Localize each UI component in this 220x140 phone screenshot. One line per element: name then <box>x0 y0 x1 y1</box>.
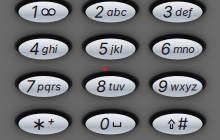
staticText: pqrs <box>37 80 61 93</box>
button[interactable]: 4 <box>0 18 88 79</box>
button[interactable]: 9 <box>132 56 220 117</box>
button[interactable]: shift hash <box>132 93 220 140</box>
staticText: 7 <box>26 77 35 96</box>
staticText: # <box>177 114 187 134</box>
staticText: + <box>47 114 55 128</box>
staticText: 0 <box>99 114 109 134</box>
staticText: def <box>175 5 192 18</box>
staticText: abc <box>107 5 127 18</box>
staticText: mno <box>173 42 194 55</box>
button[interactable]: 5 <box>65 18 155 79</box>
button[interactable]: 7 <box>0 56 88 117</box>
staticText: 4 <box>29 39 39 59</box>
staticText: 1 <box>31 2 38 22</box>
staticText: 3 <box>163 2 173 22</box>
staticText: 5 <box>98 39 108 59</box>
staticText: 9 <box>158 77 168 96</box>
button[interactable]: 3 <box>132 0 220 42</box>
staticText: 8 <box>96 77 106 96</box>
button[interactable]: 6 <box>132 18 220 79</box>
staticText: ghi <box>42 42 58 55</box>
staticText: 2 <box>94 2 104 22</box>
button[interactable]: 0 space <box>65 93 155 140</box>
staticText: ∗ <box>32 114 47 134</box>
staticText: jkl <box>111 42 123 55</box>
staticText: wxyz <box>170 80 197 93</box>
button[interactable]: star plus <box>0 93 88 140</box>
staticText: tuv <box>109 80 125 93</box>
button[interactable]: 8 <box>65 56 155 117</box>
button[interactable]: 1 voicemail <box>0 0 88 42</box>
staticText: 6 <box>161 39 171 59</box>
button[interactable]: 2 <box>65 0 155 42</box>
